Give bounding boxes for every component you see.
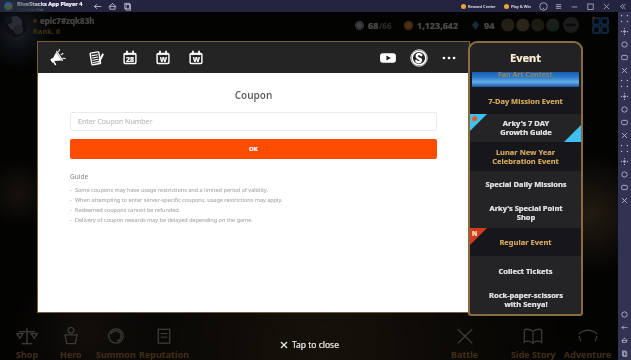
button[interactable]: Recents [618,347,631,360]
button[interactable]: Home [108,2,117,11]
staticText: 1,123,642 [417,19,459,31]
button[interactable]: 94 [470,19,495,31]
staticText: Battle [451,348,479,360]
staticText: Collect Tickets [498,266,553,276]
staticText: Regular Event [499,237,552,247]
button[interactable]: Menu [591,16,609,34]
staticText: Redeemed coupons cannot be refunded. [75,206,181,213]
button[interactable]: Help [539,2,548,11]
button[interactable]: Stove [410,49,428,67]
button[interactable]: 1,123,642 [403,19,459,31]
button[interactable]: Hero [43,324,99,360]
button[interactable]: Keymap [618,116,631,129]
staticText: W [160,55,167,65]
button[interactable]: Collapse [618,2,627,11]
button[interactable]: Tap to close [280,339,339,351]
button[interactable]: Shop [0,324,55,360]
button[interactable]: Notice [49,50,65,66]
staticText: BlueStacks App Player 4 [17,0,83,7]
button[interactable]: Regular Event [470,228,581,256]
button[interactable]: Summon [88,324,144,360]
button[interactable]: Battle [437,324,493,360]
button[interactable]: Arky's 7 DAY Growth Guide [470,114,581,142]
button[interactable]: Multi instance [123,2,132,11]
button[interactable]: Script [618,194,631,207]
staticText: Special Daily Missions [485,179,567,189]
staticText: Coupon [38,88,469,102]
button[interactable]: Rock-paper-scissors with Senya! [470,285,581,314]
button[interactable]: Notes [89,50,105,66]
button[interactable]: Back [618,321,631,334]
button[interactable]: Reward Center [461,4,496,9]
staticText: Side Story [511,348,556,360]
button[interactable]: Volume [618,38,631,51]
staticText: Reward Center [468,4,496,9]
staticText: 68 [368,19,379,31]
staticText: Guide [70,172,89,181]
button[interactable]: Fullscreen [618,12,631,25]
staticText: Reputation [139,348,190,360]
button[interactable]: Screenshot [618,64,631,77]
button[interactable]: Camera [618,77,631,90]
staticText: W [193,55,200,65]
staticText: Summon [96,348,136,360]
button[interactable]: Enter Coupon Number [70,112,437,131]
button[interactable]: Profile [4,13,28,37]
staticText: Lunar New Year Celebration Event [492,147,559,167]
button[interactable]: Adventure [560,324,616,360]
button[interactable]: Multi instance [618,142,631,155]
staticText: - [70,196,72,203]
staticText: - [70,216,72,223]
button[interactable]: Weekly calendar 2 [188,50,204,66]
button[interactable]: Macro [618,168,631,181]
button[interactable]: YouTube [379,49,397,67]
staticText: Delivery of coupon rewards may be delaye… [75,216,253,223]
button[interactable]: Close [602,2,611,11]
staticText: 2 New Start Pad [17,7,44,12]
staticText: When attempting to enter server-specific… [75,196,283,203]
button[interactable]: OK [70,139,437,159]
staticText: N [472,229,478,238]
button[interactable]: Weekly calendar [155,50,171,66]
staticText: Event [510,50,541,65]
button[interactable]: Record [618,51,631,64]
button[interactable]: Side Story [505,324,561,360]
button[interactable]: 7-Day Mission Event [470,87,581,114]
button[interactable]: Chat [562,16,580,34]
staticText: epic7#zqk83h [40,15,95,26]
button[interactable]: Settings [618,308,631,321]
button[interactable]: More [440,49,458,67]
button[interactable]: Sync [618,155,631,168]
button[interactable]: Move [618,25,631,38]
staticText: - [70,186,72,193]
button[interactable]: Lunar New Year Celebration Event [470,142,581,171]
button[interactable]: Fan Art Contest [470,72,581,87]
button[interactable]: Monthly calendar [122,50,138,66]
button[interactable]: Back [93,2,102,11]
button[interactable]: Maximize [586,2,595,11]
button[interactable]: Home [618,334,631,347]
button[interactable]: 68 [354,19,392,31]
staticText: OK [249,145,258,153]
staticText: 7-Day Mission Event [488,96,563,106]
button[interactable]: Collect Tickets [470,256,581,285]
staticText: Rank. 6 [33,26,61,36]
staticText: Adventure [564,348,612,360]
staticText: Enter Coupon Number [78,117,153,127]
button[interactable]: Menu [554,2,563,11]
button[interactable]: Gamepad [618,129,631,142]
button[interactable]: Play & Win [504,4,531,9]
staticText: /66 [379,20,392,31]
staticText: Arky's Special Point Shop [489,203,563,223]
button[interactable]: Eco mode [618,181,631,194]
staticText: Fan Art Contest [498,70,553,80]
button[interactable]: Location [618,90,631,103]
staticText: Hero [60,348,82,360]
staticText: Shop [16,348,39,360]
staticText: - [70,206,72,213]
button[interactable]: Arky's Special Point Shop [470,197,581,228]
button[interactable]: Reputation [136,324,192,360]
button[interactable]: Shake [618,103,631,116]
button[interactable]: Minimize [570,2,579,11]
button[interactable]: Special Daily Missions [470,171,581,197]
